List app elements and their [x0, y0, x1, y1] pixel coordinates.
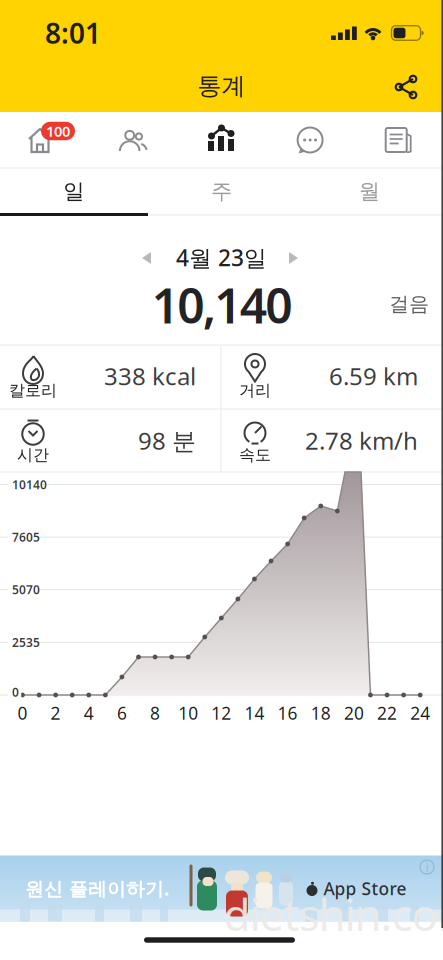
staticText: 4월 23일: [176, 242, 267, 272]
staticText: 거리: [239, 381, 271, 400]
staticText: 4: [84, 701, 94, 724]
button[interactable]: Friends: [89, 112, 177, 168]
staticText: 칼로리: [9, 381, 57, 400]
button[interactable]: News: [355, 112, 443, 168]
staticText: 일: [63, 178, 84, 205]
staticText: 5070: [12, 582, 40, 598]
button[interactable]: Share: [384, 66, 428, 106]
staticText: 주: [211, 178, 232, 205]
staticText: 2: [51, 701, 61, 724]
staticText: 12: [211, 701, 231, 724]
staticText: 7605: [12, 529, 40, 545]
staticText: 속도: [239, 445, 271, 465]
staticText: 6.59 km: [329, 360, 418, 392]
staticText: 2535: [12, 634, 40, 650]
staticText: 6: [117, 701, 127, 724]
staticText: 10,140: [152, 273, 292, 337]
staticText: App Store: [323, 877, 406, 900]
staticText: 338 kcal: [104, 360, 196, 392]
staticText: 98 분: [138, 425, 196, 456]
button[interactable]: 일: [0, 168, 148, 214]
staticText: 100: [46, 121, 70, 141]
staticText: 20: [344, 701, 364, 724]
staticText: 통계: [197, 71, 245, 101]
staticText: 18: [311, 701, 331, 724]
staticText: 10140: [12, 476, 47, 492]
staticText: i: [425, 859, 428, 875]
staticText: 원신 플레이하기.: [25, 876, 169, 901]
staticText: 10: [178, 701, 198, 724]
button[interactable]: 광고: 원신 플레이하기: [0, 855, 443, 921]
staticText: 14: [244, 701, 264, 724]
button[interactable]: 월: [295, 168, 443, 214]
button[interactable]: 주: [148, 168, 295, 214]
staticText: 시간: [17, 445, 49, 465]
staticText: 걸음: [389, 292, 429, 316]
staticText: 8:01: [45, 14, 101, 52]
staticText: 월: [359, 178, 380, 205]
staticText: 2.78 km/h: [305, 425, 418, 456]
staticText: 0: [17, 701, 27, 724]
staticText: dietshin.com: [223, 885, 443, 943]
staticText: 16: [278, 701, 298, 724]
staticText: 24: [410, 701, 430, 724]
button[interactable]: Previous day: [137, 248, 157, 268]
staticText: 22: [377, 701, 397, 724]
button[interactable]: Home: [0, 112, 88, 168]
button[interactable]: Next day: [283, 248, 303, 268]
staticText: 8: [150, 701, 160, 724]
button[interactable]: Chat: [266, 112, 354, 168]
staticText: 0: [12, 684, 19, 700]
button[interactable]: Statistics: [177, 112, 265, 168]
